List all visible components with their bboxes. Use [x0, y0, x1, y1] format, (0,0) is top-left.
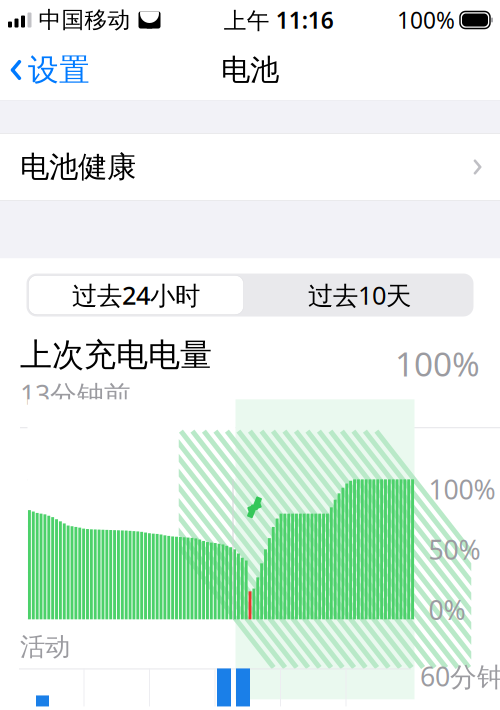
staticText: 100%	[428, 471, 495, 507]
staticText: 设置	[28, 51, 90, 89]
button[interactable]: 过去10天	[245, 273, 473, 316]
button[interactable]: 设置	[0, 43, 90, 97]
staticText: 上次充电电量	[20, 335, 212, 375]
staticText: 上午 11:16	[224, 5, 334, 35]
staticText: 中国移动	[38, 6, 130, 34]
staticText: 60分钟	[420, 658, 500, 694]
button[interactable]: 过去24小时	[26, 273, 245, 316]
button[interactable]: 电池健康	[0, 133, 500, 201]
staticText: 100%	[397, 5, 455, 35]
staticText: 0%	[428, 592, 465, 627]
staticText: 过去24小时	[72, 278, 200, 312]
staticText: 活动	[20, 631, 70, 662]
staticText: 100%	[395, 341, 480, 386]
staticText: 50%	[428, 532, 480, 567]
staticText: 电池	[221, 52, 279, 88]
staticText: 13分钟前	[20, 377, 131, 412]
staticText: 电池健康	[20, 149, 136, 185]
staticText: 过去10天	[308, 278, 411, 312]
